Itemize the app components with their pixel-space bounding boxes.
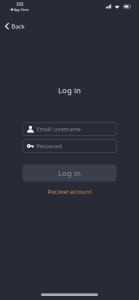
staticText: 3:52: [16, 1, 23, 7]
staticText: Password: [36, 142, 62, 150]
button[interactable]: Recover account: [42, 185, 96, 198]
staticText: Back: [11, 22, 24, 30]
button[interactable]: Back: [0, 18, 29, 34]
staticText: Recover account: [47, 187, 91, 195]
staticText: Email / username: [36, 125, 80, 133]
button[interactable]: Log in: [22, 164, 116, 181]
staticText: Log in: [58, 168, 81, 178]
staticText: App Store: [14, 7, 29, 12]
staticText: Log in: [58, 85, 81, 95]
